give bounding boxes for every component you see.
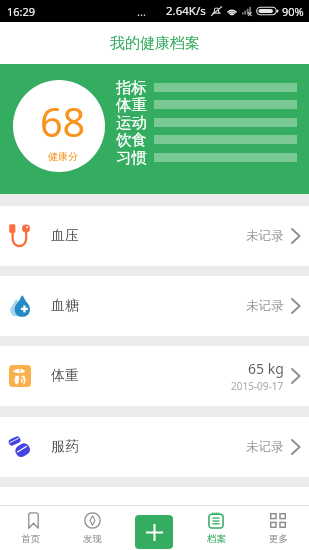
- staticText: 血压: [51, 227, 79, 245]
- staticText: 90%: [282, 4, 304, 19]
- button[interactable]: 发现: [61, 505, 123, 550]
- staticText: 我的健康档案: [110, 34, 200, 53]
- staticText: 体重: [51, 367, 79, 385]
- staticText: 未记录: [246, 298, 284, 314]
- staticText: 68: [40, 95, 86, 149]
- staticText: ...: [137, 4, 146, 19]
- button[interactable]: 更多: [247, 505, 309, 550]
- staticText: 65 kg: [248, 359, 284, 378]
- staticText: 档案: [207, 533, 226, 545]
- button[interactable]: 档案: [185, 505, 247, 550]
- button[interactable]: 血糖: [0, 276, 309, 336]
- button[interactable]: 体重: [0, 346, 309, 406]
- button[interactable]: 服药: [0, 417, 309, 477]
- staticText: 发现: [83, 533, 102, 545]
- button[interactable]: 血压: [0, 206, 309, 266]
- staticText: 2.64K/s: [166, 3, 206, 19]
- staticText: 饮食: [116, 130, 147, 150]
- staticText: 服药: [51, 438, 79, 456]
- staticText: 首页: [21, 533, 40, 545]
- staticText: 运动: [116, 113, 147, 133]
- staticText: 2015-09-17: [231, 379, 284, 393]
- button[interactable]: Add record: [135, 515, 173, 549]
- staticText: 未记录: [246, 439, 284, 455]
- staticText: 16:29: [7, 4, 36, 19]
- staticText: 更多: [269, 533, 288, 545]
- staticText: 习惯: [116, 148, 147, 168]
- staticText: 血糖: [51, 297, 79, 315]
- staticText: 体重: [116, 95, 147, 115]
- button[interactable]: 首页: [0, 505, 61, 550]
- staticText: 健康分: [48, 150, 78, 163]
- staticText: 指标: [116, 78, 147, 98]
- button[interactable]: Health score 68: [13, 80, 105, 172]
- staticText: 未记录: [246, 228, 284, 244]
